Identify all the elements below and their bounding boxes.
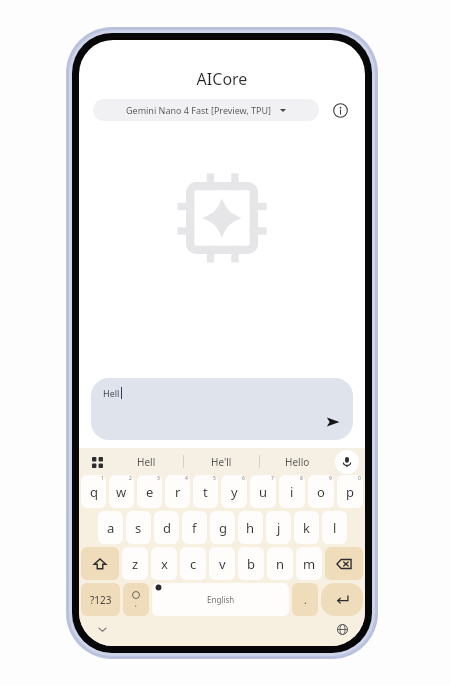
button[interactable]: x	[151, 547, 177, 580]
staticText: 3	[157, 475, 160, 482]
button[interactable]: ?123	[81, 583, 120, 616]
button[interactable]: Information	[329, 99, 351, 121]
staticText: b	[247, 555, 255, 573]
button[interactable]: j	[266, 511, 291, 544]
staticText: h	[246, 519, 255, 537]
button[interactable]: v	[209, 547, 235, 580]
button[interactable]: Hell	[109, 448, 183, 475]
button[interactable]: e	[137, 475, 162, 508]
staticText: c	[190, 555, 197, 573]
button[interactable]: Shift	[81, 547, 119, 580]
button[interactable]: w	[109, 475, 134, 508]
staticText: g	[219, 519, 227, 537]
button[interactable]: d	[154, 511, 179, 544]
staticText: .	[304, 593, 307, 607]
button[interactable]: He'll	[184, 448, 259, 475]
staticText: v	[219, 555, 226, 573]
staticText: 1	[101, 475, 104, 482]
button[interactable]: i	[279, 475, 305, 508]
staticText: ?123	[90, 593, 112, 607]
button[interactable]: k	[294, 511, 319, 544]
staticText: Hello	[285, 455, 310, 469]
button[interactable]: Gemini Nano 4 Fast [Preview, TPU]	[93, 99, 319, 121]
staticText: 9	[329, 475, 332, 482]
button[interactable]: o	[308, 475, 334, 508]
button[interactable]: s	[126, 511, 151, 544]
staticText: i	[290, 483, 294, 501]
button[interactable]: n	[267, 547, 293, 580]
staticText: He'll	[211, 455, 232, 469]
staticText: 6	[242, 475, 245, 482]
staticText: e	[146, 483, 154, 501]
staticText: u	[259, 483, 268, 501]
staticText: f	[192, 519, 197, 537]
button[interactable]: Hello	[260, 448, 335, 475]
staticText: q	[90, 483, 98, 501]
staticText: AICore	[79, 68, 365, 90]
button[interactable]: Hide keyboard	[91, 618, 113, 640]
button[interactable]: Hell	[91, 378, 353, 440]
staticText: Gemini Nano 4 Fast [Preview, TPU]	[126, 104, 272, 116]
button[interactable]: Voice input	[335, 450, 359, 474]
staticText: English	[207, 594, 235, 605]
button[interactable]: l	[322, 511, 347, 544]
button[interactable]: English	[152, 583, 289, 616]
staticText: n	[276, 555, 285, 573]
button[interactable]: t	[193, 475, 218, 508]
button[interactable]: u	[250, 475, 276, 508]
button[interactable]: q	[81, 475, 106, 508]
button[interactable]: y	[221, 475, 247, 508]
staticText: k	[303, 519, 310, 537]
button[interactable]: a	[98, 511, 123, 544]
button[interactable]: f	[182, 511, 207, 544]
staticText: ,	[135, 599, 137, 609]
staticText: l	[333, 519, 337, 537]
button[interactable]: Change language	[331, 618, 353, 640]
button[interactable]: Backspace	[325, 547, 363, 580]
staticText: 4	[185, 475, 188, 482]
button[interactable]: r	[165, 475, 190, 508]
staticText: 0	[358, 475, 361, 482]
button[interactable]: h	[238, 511, 263, 544]
button[interactable]: b	[238, 547, 264, 580]
staticText: z	[132, 555, 139, 573]
staticText: s	[135, 519, 142, 537]
staticText: y	[231, 483, 238, 501]
button[interactable]: p	[337, 475, 363, 508]
button[interactable]: Send	[321, 410, 345, 434]
staticText: 8	[300, 475, 303, 482]
button[interactable]: Enter	[321, 583, 363, 616]
staticText: p	[346, 483, 354, 501]
staticText: t	[203, 483, 208, 501]
button[interactable]: m	[296, 547, 322, 580]
staticText: o	[317, 483, 325, 501]
staticText: d	[163, 519, 171, 537]
staticText: 7	[271, 475, 274, 482]
button[interactable]: Emoji	[123, 583, 149, 616]
button[interactable]: g	[210, 511, 235, 544]
staticText: x	[161, 555, 168, 573]
staticText: j	[277, 519, 281, 537]
button[interactable]: Toolbar	[85, 450, 109, 474]
staticText: a	[107, 519, 115, 537]
button[interactable]: c	[180, 547, 206, 580]
button[interactable]: .	[292, 583, 318, 616]
staticText: 5	[213, 475, 216, 482]
staticText: Hell	[137, 455, 156, 469]
staticText: 2	[129, 475, 132, 482]
staticText: Hell	[103, 387, 120, 399]
staticText: r	[175, 483, 181, 501]
button[interactable]: z	[122, 547, 148, 580]
staticText: m	[303, 555, 316, 573]
staticText: w	[116, 483, 127, 501]
